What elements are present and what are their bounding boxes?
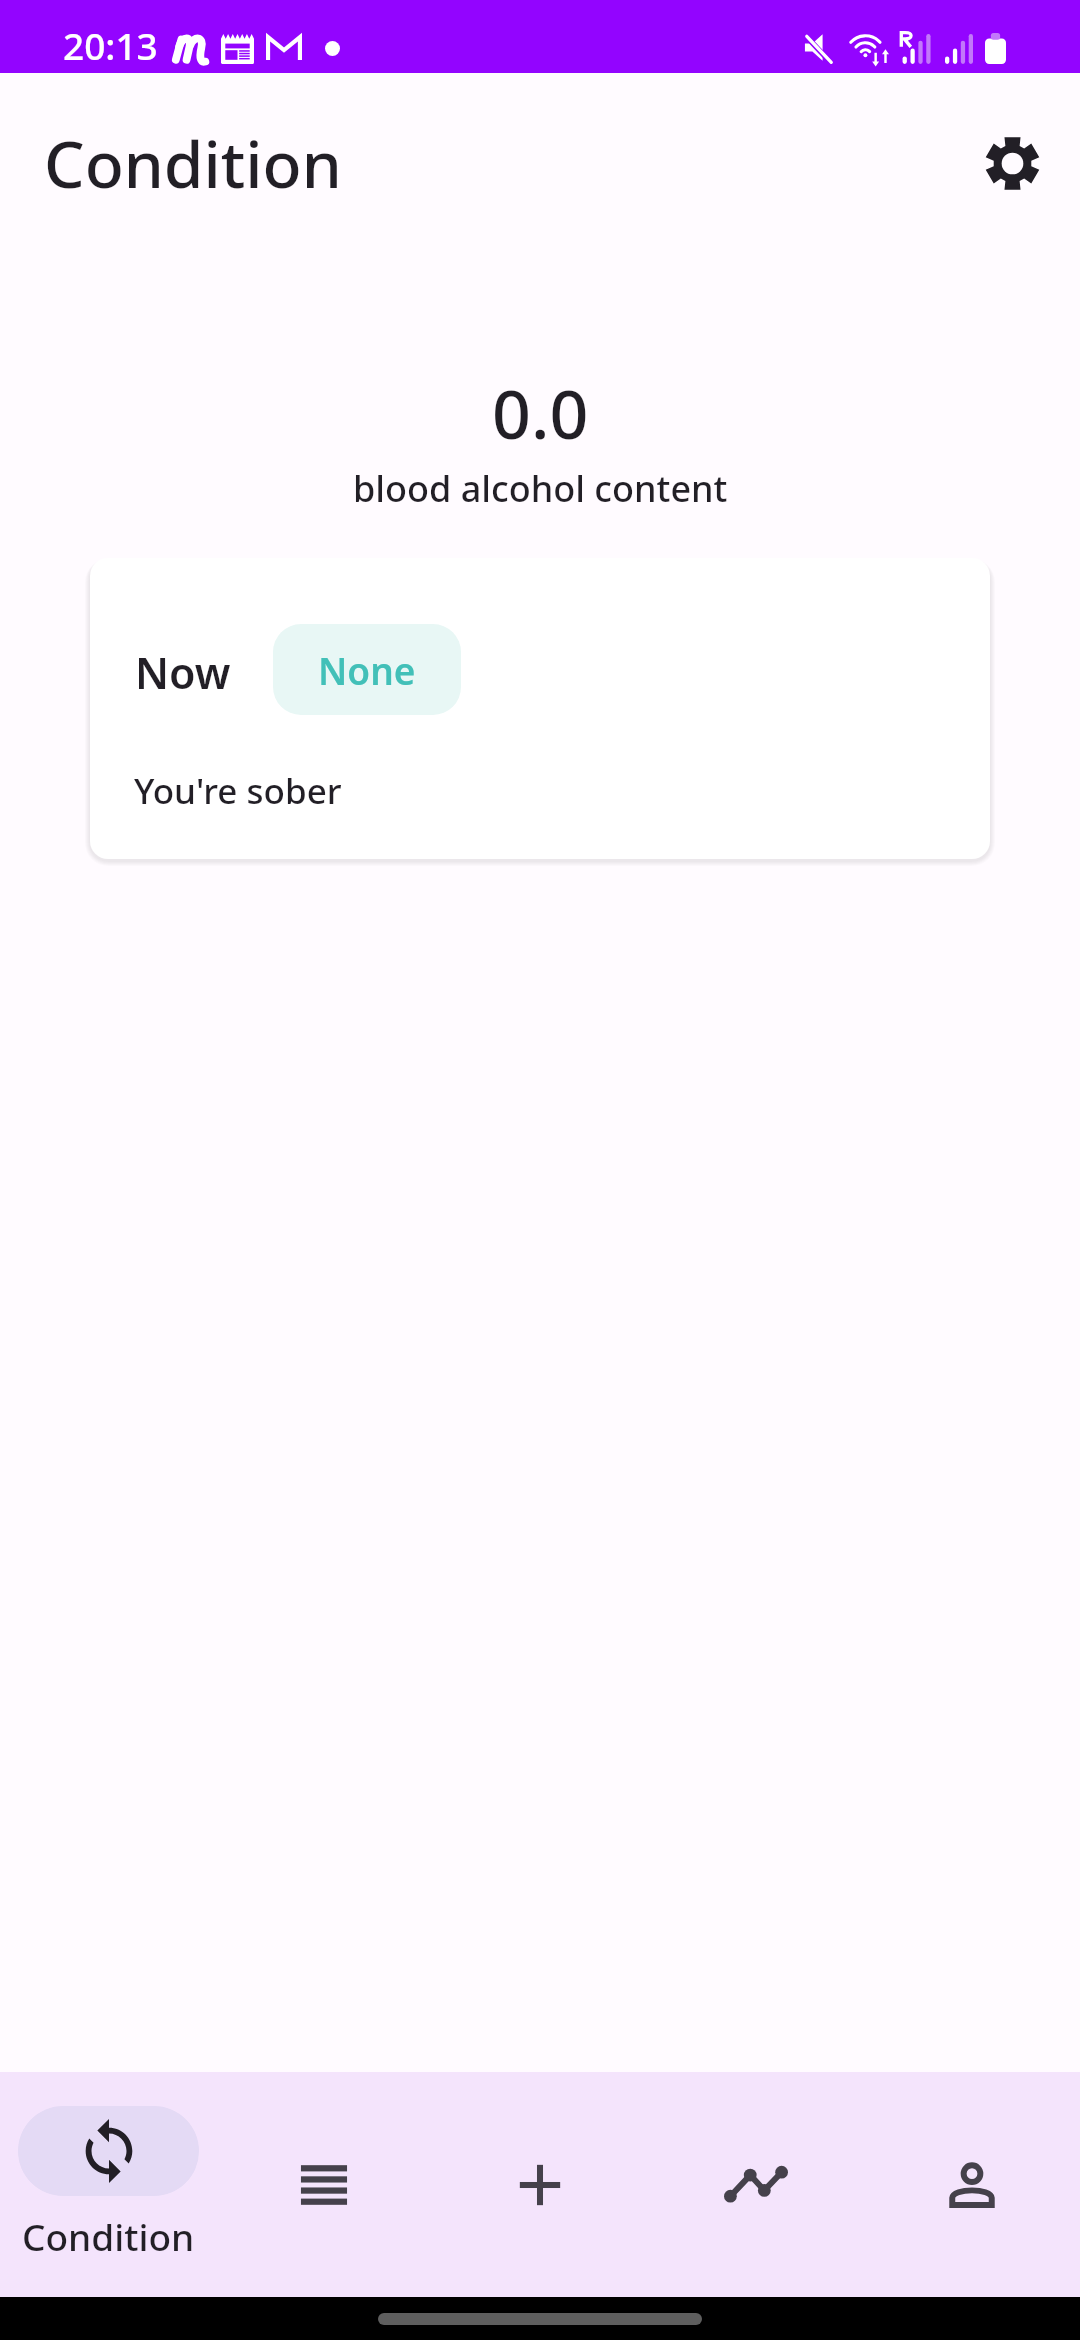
button[interactable]: Add [432, 2072, 648, 2297]
staticText: None [318, 645, 416, 695]
button[interactable]: List [216, 2072, 432, 2297]
staticText: blood alcohol content [353, 464, 728, 513]
button[interactable]: Profile [864, 2072, 1080, 2297]
button[interactable]: Now [90, 558, 990, 859]
staticText: 0.0 [492, 366, 589, 459]
button[interactable]: Settings [960, 111, 1064, 215]
button[interactable]: Condition [0, 2072, 216, 2297]
staticText: You're sober [134, 767, 342, 815]
staticText: Condition [44, 120, 342, 207]
staticText: 20:13 [63, 20, 158, 70]
staticText: Condition [22, 2211, 195, 2261]
button[interactable]: None [273, 624, 461, 715]
staticText: Now [135, 643, 231, 702]
button[interactable]: Statistics [648, 2072, 864, 2297]
